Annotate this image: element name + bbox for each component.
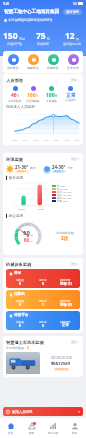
staticText: 正常 [62,323,69,327]
staticText: 预警 [29,431,35,434]
staticText: 总数量 [16,299,24,302]
staticText: 极限人员违规 [12,410,33,414]
button[interactable]: 我的 [64,418,86,438]
staticText: 运行中 [39,320,47,323]
button[interactable]: 证件管理 [63,54,83,70]
button[interactable]: 项目详情 [63,9,82,15]
staticText: 预警 (1) [60,281,72,286]
staticText: × [78,409,80,414]
button[interactable]: 塔吊 [6,269,80,288]
staticText: 今日在建项目实时监控信息统计 [8,18,53,22]
staticText: 5G [73,2,77,6]
staticText: 更多 › [71,157,79,161]
button[interactable]: 更多 › [70,339,80,345]
staticText: 09:00 [33,139,39,142]
staticText: 07:00 [22,139,28,142]
staticText: dB [30,233,34,236]
staticText: ▍噪音监测 [6,176,24,181]
button[interactable]: 首页 [0,418,21,438]
button[interactable]: 12 [57,30,86,46]
staticText: 6 [19,281,21,286]
staticText: 完成进度 [37,42,49,46]
staticText: 3 [27,346,29,350]
staticText: 0 [42,323,44,328]
staticText: 17:00 [74,139,80,142]
staticText: 2021-05-20 13:23 [51,356,72,360]
button[interactable]: 24-30° [43,164,80,173]
button[interactable]: 正常 [61,86,80,101]
staticText: 6 [19,323,21,328]
staticText: 机械设备监测 [6,262,32,267]
staticText: 46 [11,92,17,99]
staticText: 运行中 [39,299,47,302]
staticText: 工服佩戴 [46,99,57,102]
button[interactable]: 更多 › [70,156,80,162]
staticText: 轻度 101-150 [57,190,72,193]
button[interactable]: 更多 › [70,261,80,267]
button[interactable]: 统计分析 [42,418,64,438]
button[interactable]: 视频监控 [23,54,43,70]
button[interactable]: 极限人员违规 [3,407,83,416]
button[interactable]: 46 [6,86,24,102]
staticText: 严重 300+ [57,199,68,202]
staticText: 人员状态 [65,98,76,101]
staticText: 环境监测 [6,157,23,162]
button[interactable]: 智慧工地中心工地项目集团项... ▾ [4,8,63,16]
staticText: 晴天 [30,166,36,170]
staticText: 100 [46,92,55,99]
staticText: 统计分析 [48,431,59,434]
staticText: 重度 201-300 [57,196,72,199]
staticText: 智能监控 [47,66,59,70]
button[interactable]: 实时监控 [3,54,23,70]
button[interactable]: 2021-05-20 13:23 [6,352,80,374]
staticText: 总数量 [16,320,24,323]
staticText: 塔吊 [14,271,22,276]
staticText: 正常 [66,92,76,98]
staticText: 适宜施工 [54,170,64,173]
staticText: 项目剩余工期 [63,42,81,46]
staticText: 1 [42,302,44,307]
button[interactable]: 预警 [21,418,42,438]
staticText: 优 0-50 [57,184,65,187]
button[interactable]: 塔基平台 [6,311,80,330]
staticText: 智慧渣土车洗车监测 [6,340,44,345]
staticText: % [36,94,39,98]
staticText: 小雨 [67,166,73,170]
staticText: 故障预警 [60,299,71,302]
staticText: ▍扬尘监测 [6,214,24,219]
staticText: 塔基平台 [14,313,29,318]
button[interactable]: 智能监控 [43,54,63,70]
staticText: 升降机 [14,292,25,297]
staticText: 24-30° [52,164,66,170]
staticText: 100 [27,92,36,99]
button[interactable]: 升降机 [6,290,80,309]
button[interactable]: 75 [28,30,57,46]
staticText: 良 51-100 [57,187,68,190]
button[interactable]: 100 [42,86,61,102]
staticText: PM10 [38,208,45,211]
staticText: 万元 [19,37,25,41]
staticText: 现场进入人员趋势 [6,105,35,110]
staticText: 60 [24,237,30,243]
staticText: 鄂A12589 [51,361,71,367]
staticText: 2次 [61,235,69,242]
staticText: 运行中 [39,278,47,281]
staticText: 已清洗出场 [55,368,68,371]
staticText: 总项目产值 [7,42,22,46]
staticText: 智慧工地中心工地项目集团项... ▾ [4,9,63,15]
staticText: dB [30,240,33,243]
staticText: 更多 › [71,262,79,266]
staticText: 05:00 [12,139,18,142]
button[interactable]: 更多 › [70,77,80,83]
staticText: 更多 › [71,340,79,344]
staticText: % [55,94,58,98]
button[interactable]: 100 [24,86,42,102]
button[interactable]: 150 [0,30,28,46]
staticText: 故障预警 [60,278,71,281]
button[interactable]: 21-30° [6,164,43,173]
staticText: 75 [36,30,46,42]
staticText: 11:00 [43,139,49,142]
staticText: 21-30° [15,164,29,170]
staticText: 实时监控 [7,66,19,70]
staticText: 安全帽佩戴 [26,99,40,102]
